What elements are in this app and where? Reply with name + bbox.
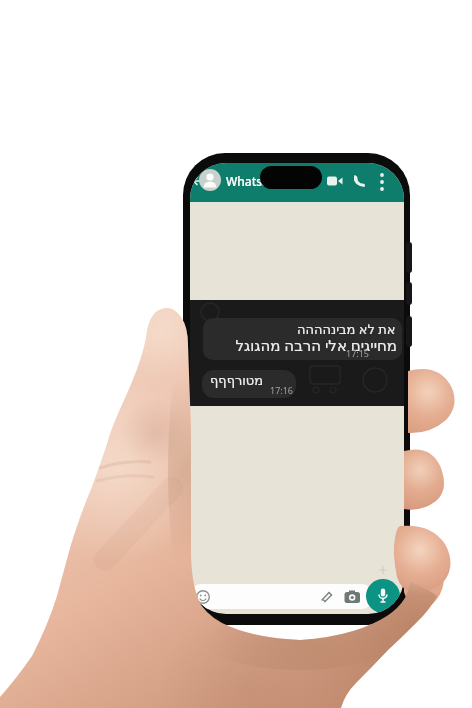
- button[interactable]: [190, 584, 374, 609]
- button[interactable]: [366, 579, 400, 613]
- staticText: את לא מבינהההה: [297, 320, 396, 338]
- button[interactable]: [352, 174, 366, 188]
- staticText: Whatsa: [226, 173, 269, 189]
- button[interactable]: מטורףףף: [202, 370, 296, 398]
- staticText: 17:15: [346, 347, 370, 359]
- button[interactable]: [327, 175, 343, 187]
- button[interactable]: Whatsa: [190, 163, 404, 202]
- button[interactable]: [199, 169, 221, 191]
- staticText: מחייגים אלי הרבה מהגוגל: [203, 335, 397, 355]
- button[interactable]: [192, 175, 204, 187]
- button[interactable]: [378, 172, 386, 194]
- button[interactable]: את לא מבינהההה: [203, 318, 402, 360]
- staticText: מטורףףף: [210, 373, 264, 388]
- staticText: 17:16: [270, 384, 294, 396]
